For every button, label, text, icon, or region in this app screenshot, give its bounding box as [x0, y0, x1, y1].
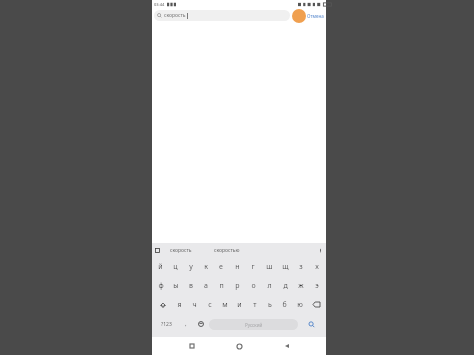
staticText: м	[222, 300, 228, 310]
staticText: ,	[185, 320, 187, 328]
button[interactable]: скоростью	[214, 247, 240, 254]
button[interactable]: Search	[154, 10, 290, 21]
staticText: а	[204, 281, 208, 291]
button[interactable]: Отмена	[307, 13, 324, 19]
staticText: щ	[282, 262, 289, 272]
button[interactable]: щ	[277, 257, 293, 276]
button[interactable]: р	[229, 276, 245, 295]
staticText: с	[208, 300, 212, 310]
staticText: д	[283, 281, 288, 291]
button[interactable]: в	[183, 276, 198, 295]
button[interactable]: б	[277, 295, 292, 314]
staticText: я	[177, 300, 182, 310]
button[interactable]: ш	[261, 257, 277, 276]
button[interactable]: ч	[187, 295, 202, 314]
button[interactable]: ц	[168, 257, 183, 276]
button[interactable]: е	[213, 257, 229, 276]
staticText: й	[158, 262, 163, 272]
button[interactable]: м	[217, 295, 232, 314]
other: Search	[157, 13, 162, 18]
staticText: з	[299, 262, 303, 272]
button[interactable]: Home	[231, 338, 247, 354]
button[interactable]: й	[153, 257, 168, 276]
button[interactable]: Search	[298, 316, 324, 332]
button[interactable]: More suggestions	[318, 248, 323, 253]
staticText: и	[237, 300, 242, 310]
button[interactable]: у	[183, 257, 198, 276]
staticText: 03:44	[154, 2, 165, 7]
button[interactable]: Account	[292, 9, 306, 23]
button[interactable]: л	[261, 276, 277, 295]
staticText: ф	[158, 281, 164, 291]
button[interactable]: ж	[293, 276, 309, 295]
staticText: р	[235, 281, 240, 291]
staticText: ю	[297, 300, 303, 310]
button[interactable]: ф	[153, 276, 168, 295]
staticText: в	[189, 281, 193, 291]
button[interactable]: н	[229, 257, 245, 276]
staticText: скорость	[164, 12, 186, 19]
staticText: Русский	[245, 322, 263, 328]
staticText: х	[315, 262, 319, 272]
staticText: ь	[268, 300, 272, 310]
button[interactable]: п	[213, 276, 229, 295]
staticText: ч	[192, 300, 197, 310]
button[interactable]: д	[277, 276, 293, 295]
button[interactable]: т	[247, 295, 262, 314]
staticText: ц	[173, 262, 178, 272]
staticText: т	[253, 300, 257, 310]
button[interactable]: э	[309, 276, 325, 295]
button[interactable]: х	[309, 257, 325, 276]
staticText: о	[251, 281, 256, 291]
staticText: ш	[266, 262, 273, 272]
button[interactable]: Shift	[153, 295, 172, 314]
button[interactable]: ?123	[154, 316, 178, 332]
button[interactable]: з	[293, 257, 309, 276]
button[interactable]: к	[198, 257, 213, 276]
button[interactable]: Clipboard	[155, 248, 160, 253]
staticText: к	[204, 262, 208, 272]
button[interactable]: ь	[262, 295, 277, 314]
button[interactable]: с	[202, 295, 217, 314]
staticText: ж	[298, 281, 304, 291]
button[interactable]: Comma	[178, 316, 193, 332]
button[interactable]: Back	[279, 338, 295, 354]
staticText: п	[219, 281, 224, 291]
staticText: г	[251, 262, 255, 272]
staticText: н	[235, 262, 240, 272]
staticText: у	[189, 262, 193, 272]
staticText: ы	[173, 281, 179, 291]
button[interactable]: Space	[209, 319, 298, 330]
button[interactable]: г	[245, 257, 261, 276]
button[interactable]: Recents	[184, 338, 200, 354]
button[interactable]: а	[198, 276, 213, 295]
button[interactable]: ы	[168, 276, 183, 295]
button[interactable]: Emoji	[193, 316, 209, 332]
button[interactable]: ю	[292, 295, 307, 314]
button[interactable]: Backspace	[307, 295, 325, 314]
button[interactable]: и	[232, 295, 247, 314]
staticText: ?123	[161, 321, 172, 328]
staticText: е	[219, 262, 223, 272]
button[interactable]: скорость	[170, 247, 192, 254]
staticText: л	[267, 281, 272, 291]
staticText: э	[315, 281, 319, 291]
button[interactable]: я	[172, 295, 187, 314]
staticText: б	[282, 300, 287, 310]
button[interactable]: о	[245, 276, 261, 295]
